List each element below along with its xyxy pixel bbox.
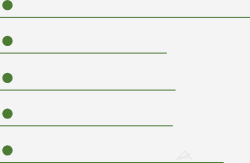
button[interactable]: List item 4 (0, 91, 250, 127)
button[interactable]: List item 3 (0, 54, 250, 91)
button[interactable]: List item 1 (0, 0, 250, 18)
button[interactable]: List item 2 (0, 18, 250, 54)
button[interactable]: List item 5 (0, 127, 250, 163)
